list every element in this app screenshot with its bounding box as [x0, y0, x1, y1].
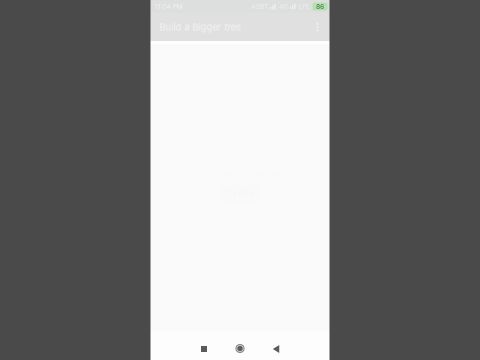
staticText: ASBT — [251, 2, 268, 11]
staticText: 4G — [279, 2, 288, 11]
staticText: 11:04 PM — [154, 2, 182, 11]
button[interactable]: Home — [225, 331, 255, 360]
button[interactable]: Recent apps — [189, 331, 219, 360]
staticText: Build a Bigger tree — [159, 21, 240, 33]
button[interactable]: Back — [261, 331, 291, 360]
staticText: 86 — [316, 2, 324, 11]
button[interactable]: More options — [305, 13, 329, 41]
staticText: LTE — [298, 2, 309, 11]
